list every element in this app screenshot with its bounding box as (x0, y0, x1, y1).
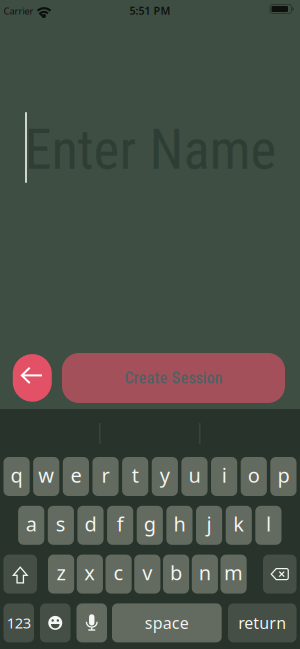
staticText: f (117, 510, 124, 537)
button[interactable]: q (3, 457, 30, 496)
button[interactable]: u (181, 457, 207, 496)
staticText: n (199, 559, 211, 586)
button[interactable]: r (92, 457, 118, 496)
staticText: i (222, 462, 227, 488)
staticText: q (11, 462, 23, 488)
button[interactable]: Create Session (62, 353, 285, 403)
staticText: d (84, 510, 96, 537)
staticText: u (188, 462, 200, 488)
button[interactable]: l (255, 506, 281, 545)
button[interactable]: f (107, 506, 133, 545)
staticText: e (70, 462, 81, 488)
button[interactable]: v (134, 555, 160, 594)
staticText: Create Session (124, 368, 222, 388)
button[interactable]: p (270, 457, 296, 496)
button[interactable]: o (241, 457, 267, 496)
button[interactable]: s (48, 506, 74, 545)
staticText: b (170, 559, 182, 586)
staticText: z (57, 559, 66, 586)
button[interactable]: k (226, 506, 252, 545)
button[interactable]: b (163, 555, 189, 594)
button[interactable]: w (33, 457, 59, 496)
button[interactable]: y (152, 457, 178, 496)
button[interactable]: a (18, 506, 44, 545)
staticText: t (132, 462, 139, 488)
button[interactable]: Emoji (40, 603, 70, 642)
staticText: p (277, 462, 289, 488)
button[interactable]: g (137, 506, 163, 545)
button[interactable]: h (166, 506, 192, 545)
staticText: 123 (7, 613, 31, 633)
staticText: j (207, 510, 212, 537)
staticText: w (38, 462, 54, 488)
staticText: 5:51 PM (129, 3, 170, 18)
staticText: x (84, 559, 95, 586)
staticText: r (101, 462, 109, 488)
staticText: g (144, 510, 156, 537)
button[interactable]: return (228, 603, 296, 642)
staticText: l (266, 510, 271, 537)
button[interactable]: e (63, 457, 89, 496)
staticText: a (26, 510, 37, 537)
staticText: o (248, 462, 260, 488)
button[interactable]: t (122, 457, 148, 496)
staticText: h (173, 510, 185, 537)
button[interactable]: 123 (3, 603, 34, 642)
button[interactable]: d (77, 506, 103, 545)
button[interactable]: Shift (3, 555, 37, 594)
button[interactable]: Back (13, 354, 52, 402)
staticText: Enter Name (24, 118, 276, 182)
staticText: v (142, 559, 152, 586)
staticText: y (160, 462, 170, 488)
staticText: Carrier (3, 5, 33, 17)
button[interactable]: i (211, 457, 237, 496)
staticText: space (145, 612, 189, 633)
button[interactable]: c (105, 555, 132, 594)
button[interactable]: m (220, 555, 247, 594)
button[interactable]: x (77, 555, 103, 594)
staticText: s (56, 510, 66, 537)
button[interactable]: z (48, 555, 74, 594)
staticText: k (233, 510, 244, 537)
staticText: c (114, 559, 124, 586)
staticText: m (224, 559, 243, 586)
button[interactable]: j (196, 506, 222, 545)
button[interactable]: n (192, 555, 218, 594)
staticText: return (238, 612, 286, 633)
button[interactable]: Delete (263, 555, 296, 594)
button[interactable]: space (112, 603, 222, 642)
button[interactable]: Dictate (76, 603, 107, 642)
